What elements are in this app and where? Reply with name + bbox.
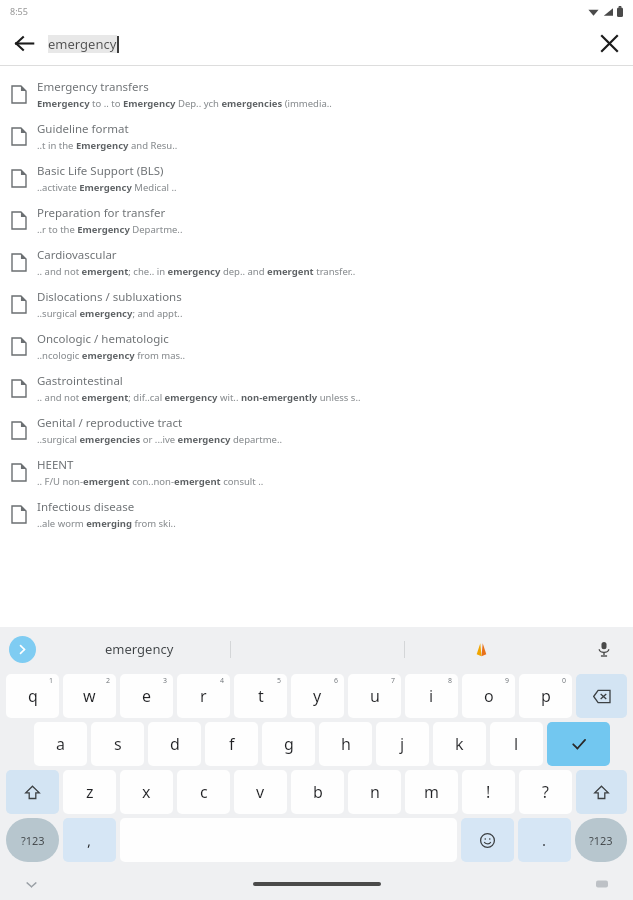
button[interactable]: , bbox=[63, 818, 116, 862]
staticText: j bbox=[400, 733, 405, 755]
button[interactable]: emergency bbox=[44, 627, 234, 671]
button[interactable]: y bbox=[291, 674, 344, 718]
button[interactable]: Enter bbox=[547, 722, 610, 766]
button[interactable]: s bbox=[91, 722, 144, 766]
staticText: ..surgical emergencies or ...ive emergen… bbox=[37, 433, 283, 446]
button[interactable]: Shift bbox=[576, 770, 627, 814]
staticText: g bbox=[284, 733, 294, 755]
button[interactable]: Symbols bbox=[575, 818, 627, 862]
staticText: x bbox=[142, 781, 151, 803]
staticText: u bbox=[370, 685, 380, 707]
button[interactable]: u bbox=[348, 674, 401, 718]
button[interactable]: m bbox=[405, 770, 458, 814]
button[interactable]: g bbox=[262, 722, 315, 766]
button[interactable]: Genital / reproductive tract bbox=[0, 409, 633, 451]
button[interactable]: Preparation for transfer bbox=[0, 199, 633, 241]
button[interactable]: k bbox=[433, 722, 486, 766]
button[interactable]: Emoji bbox=[461, 818, 514, 862]
button[interactable]: . bbox=[518, 818, 571, 862]
button[interactable]: f bbox=[205, 722, 258, 766]
staticText: o bbox=[484, 685, 494, 707]
button[interactable]: HEENT bbox=[0, 451, 633, 493]
button[interactable]: e bbox=[120, 674, 173, 718]
button[interactable]: j bbox=[376, 722, 429, 766]
button[interactable]: a bbox=[34, 722, 87, 766]
button[interactable]: z bbox=[63, 770, 116, 814]
button[interactable]: i bbox=[405, 674, 458, 718]
button[interactable]: h bbox=[319, 722, 372, 766]
button[interactable]: c bbox=[177, 770, 230, 814]
button[interactable]: w bbox=[63, 674, 116, 718]
staticText: h bbox=[341, 733, 351, 755]
button[interactable]: Gastrointestinal bbox=[0, 367, 633, 409]
staticText: Basic Life Support (BLS) bbox=[37, 163, 164, 179]
staticText: ..t in the Emergency and Resu.. bbox=[37, 139, 178, 152]
button[interactable]: ! bbox=[462, 770, 515, 814]
button[interactable]: Change keyboard bbox=[589, 871, 615, 897]
staticText: e bbox=[142, 685, 152, 707]
button[interactable]: o bbox=[462, 674, 515, 718]
button[interactable]: r bbox=[177, 674, 230, 718]
button[interactable]: d bbox=[148, 722, 201, 766]
staticText: Oncologic / hematologic bbox=[37, 331, 169, 347]
staticText: HEENT bbox=[37, 457, 74, 473]
button[interactable]: Backspace bbox=[576, 674, 627, 718]
staticText: 4 bbox=[220, 676, 225, 686]
staticText: 0 bbox=[562, 676, 567, 686]
button[interactable]: Emergency transfers bbox=[0, 73, 633, 115]
staticText: f bbox=[229, 733, 235, 755]
button[interactable]: Oncologic / hematologic bbox=[0, 325, 633, 367]
staticText: p bbox=[541, 685, 551, 707]
staticText: z bbox=[86, 781, 94, 803]
staticText: c bbox=[200, 781, 208, 803]
staticText: i bbox=[429, 685, 434, 707]
button[interactable]: Infectious disease bbox=[0, 493, 633, 535]
button[interactable]: ? bbox=[519, 770, 572, 814]
button[interactable]: Cardiovascular bbox=[0, 241, 633, 283]
staticText: ..activate Emergency Medical .. bbox=[37, 181, 177, 194]
button[interactable]: Dislocations / subluxations bbox=[0, 283, 633, 325]
staticText: s bbox=[114, 733, 122, 755]
button[interactable]: t bbox=[234, 674, 287, 718]
staticText: Genital / reproductive tract bbox=[37, 415, 183, 431]
button[interactable]: Basic Life Support (BLS) bbox=[0, 157, 633, 199]
staticText: n bbox=[370, 781, 380, 803]
button[interactable]: emergency bbox=[48, 22, 585, 65]
button[interactable]: Clear search bbox=[585, 22, 633, 65]
button[interactable]: b bbox=[291, 770, 344, 814]
button[interactable]: x bbox=[120, 770, 173, 814]
staticText: q bbox=[28, 685, 38, 707]
staticText: 5 bbox=[277, 676, 282, 686]
staticText: 2 bbox=[106, 676, 111, 686]
staticText: emergency bbox=[105, 640, 174, 658]
button[interactable]: Symbols bbox=[6, 818, 59, 862]
staticText: , bbox=[87, 830, 92, 850]
staticText: k bbox=[455, 733, 464, 755]
staticText: 6 bbox=[334, 676, 339, 686]
button[interactable]: p bbox=[519, 674, 572, 718]
button[interactable]: Guideline format bbox=[0, 115, 633, 157]
button[interactable]: Shift bbox=[6, 770, 59, 814]
button[interactable]: Hide keyboard bbox=[18, 871, 44, 897]
staticText: y bbox=[313, 685, 322, 707]
staticText: ?123 bbox=[589, 833, 613, 848]
button[interactable]: Voice input bbox=[587, 632, 621, 666]
staticText: Infectious disease bbox=[37, 499, 135, 515]
staticText: Dislocations / subluxations bbox=[37, 289, 182, 305]
staticText: 9 bbox=[505, 676, 510, 686]
staticText: 3 bbox=[163, 676, 168, 686]
button[interactable]: Back bbox=[0, 22, 48, 65]
staticText: ..ale worm emerging from ski.. bbox=[37, 517, 176, 530]
staticText: d bbox=[170, 733, 180, 755]
staticText: ! bbox=[486, 781, 491, 803]
button[interactable]: l bbox=[490, 722, 543, 766]
button[interactable]: Expand suggestions bbox=[9, 636, 36, 663]
button[interactable]: Emoji suggestion bbox=[462, 630, 500, 668]
button[interactable]: v bbox=[234, 770, 287, 814]
button[interactable]: q bbox=[6, 674, 59, 718]
staticText: Cardiovascular bbox=[37, 247, 117, 263]
button[interactable]: n bbox=[348, 770, 401, 814]
staticText: .. F/U non-emergent con..non-emergent co… bbox=[37, 475, 264, 488]
staticText: Emergency transfers bbox=[37, 79, 149, 95]
